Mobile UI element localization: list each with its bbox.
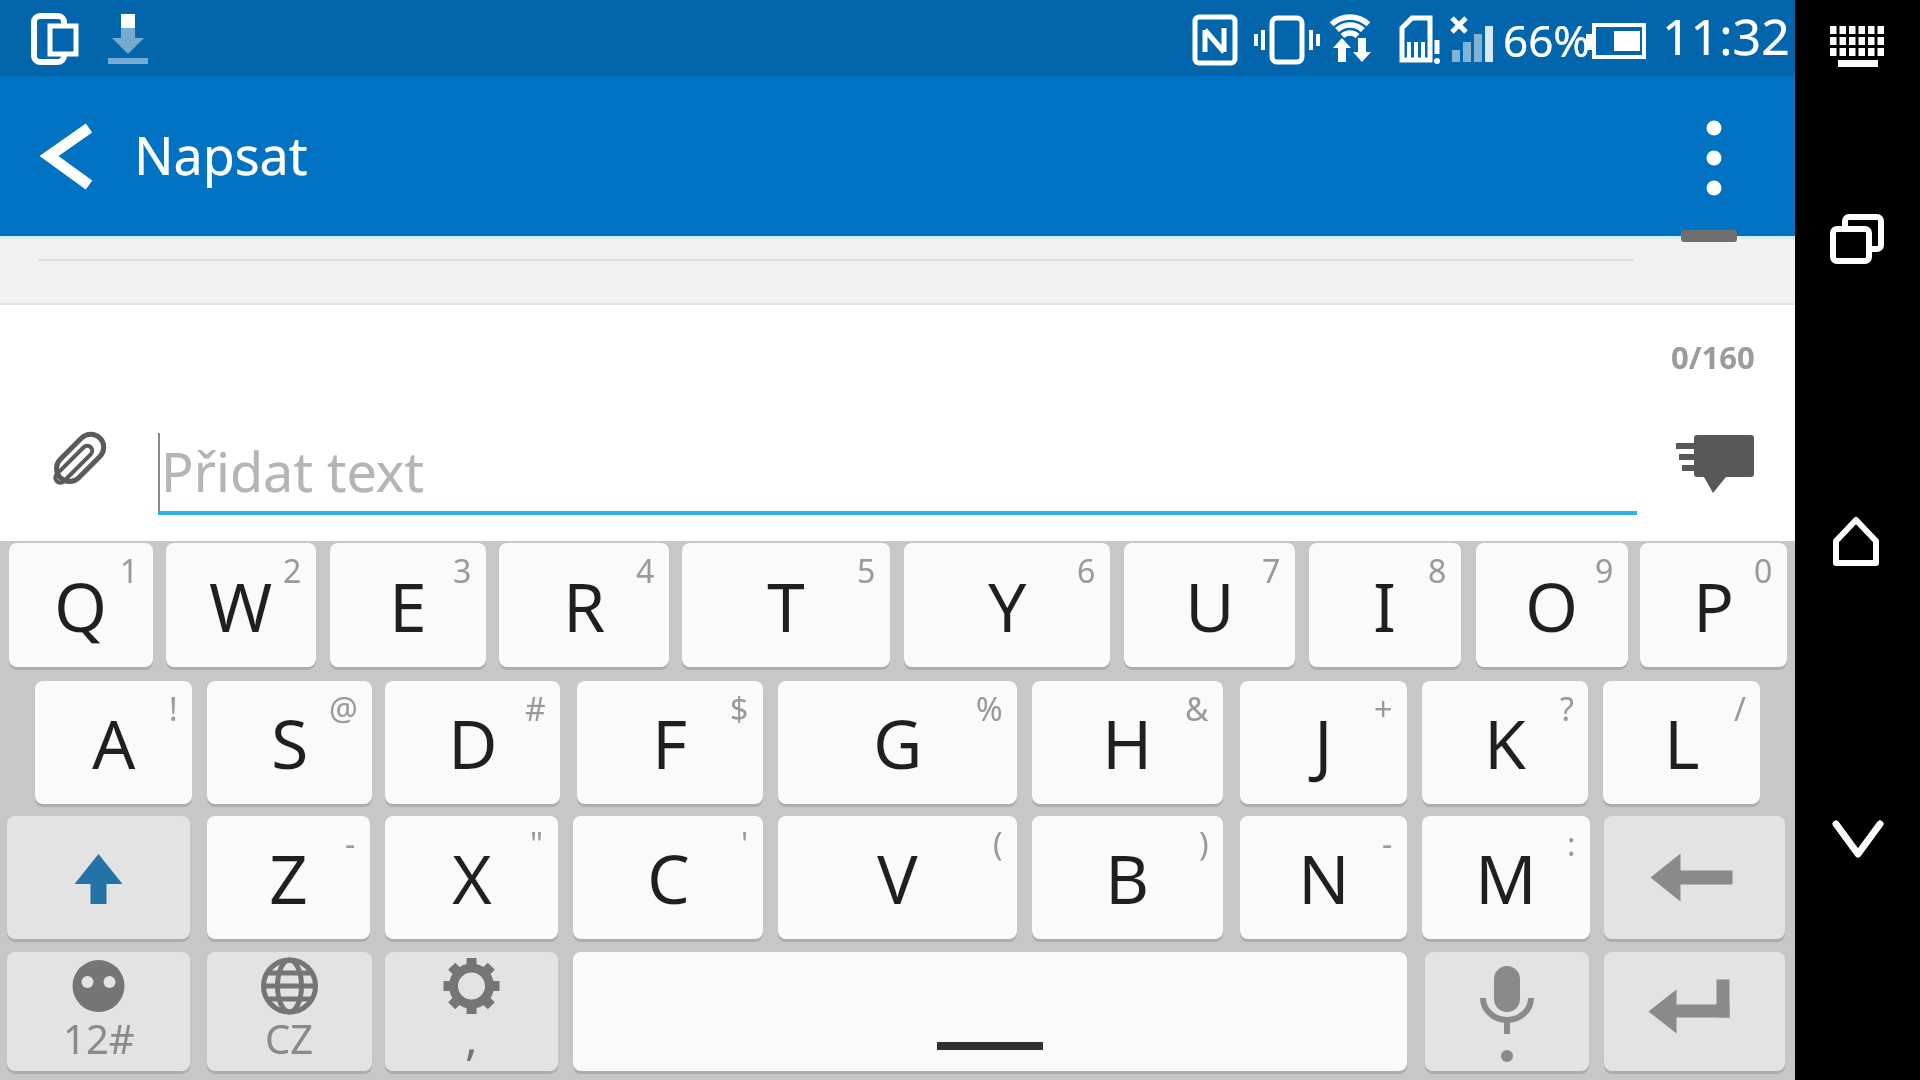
staticText: 12# (63, 1011, 135, 1065)
staticText: P (1693, 559, 1735, 652)
button[interactable]: S (207, 681, 372, 804)
staticText: CZ (265, 1011, 314, 1065)
staticText: I (1373, 559, 1397, 652)
staticText: 1 (120, 549, 139, 593)
staticText: ? (1560, 687, 1574, 731)
staticText: Z (269, 831, 308, 924)
staticText: O (1525, 559, 1579, 652)
staticText: 5 (857, 549, 876, 593)
staticText: - (345, 822, 356, 866)
button[interactable]: Q (9, 543, 153, 667)
staticText: 0/160 (1671, 336, 1755, 378)
staticText: 8 (1428, 549, 1447, 593)
staticText: J (1314, 696, 1333, 789)
staticText: Y (988, 559, 1027, 652)
button[interactable]: H (1032, 681, 1223, 804)
button[interactable]: Z (207, 816, 370, 939)
button[interactable]: Přidat text (158, 420, 1637, 516)
staticText: B (1105, 831, 1150, 924)
button[interactable]: F (577, 681, 763, 804)
staticText: F (652, 696, 688, 789)
button[interactable] (7, 816, 190, 939)
staticText: M (1475, 831, 1537, 924)
button[interactable]: W (166, 543, 316, 667)
staticText: + (1374, 687, 1393, 731)
staticText: 0 (1754, 549, 1773, 593)
staticText: T (767, 559, 805, 652)
button[interactable] (1795, 205, 1920, 275)
staticText: N (1298, 831, 1350, 924)
staticText: H (1102, 696, 1153, 789)
button[interactable]: V (778, 816, 1017, 939)
staticText: K (1484, 696, 1527, 789)
button[interactable]: N (1240, 816, 1407, 939)
button[interactable]: L (1603, 681, 1760, 804)
button[interactable] (1795, 10, 1920, 80)
button[interactable] (20, 106, 120, 206)
staticText: U (1185, 559, 1235, 652)
button[interactable]: 12# (7, 952, 190, 1071)
button[interactable] (1666, 425, 1766, 505)
button[interactable]: B (1032, 816, 1223, 939)
staticText: 4 (636, 549, 655, 593)
staticText: - (1382, 822, 1393, 866)
button[interactable]: J (1240, 681, 1407, 804)
staticText: $ (730, 687, 749, 731)
staticText: V (877, 831, 918, 924)
staticText: R (563, 559, 606, 652)
staticText: Q (54, 559, 108, 652)
staticText: 7 (1262, 549, 1281, 593)
button[interactable]: A (35, 681, 192, 804)
button[interactable]: G (778, 681, 1017, 804)
staticText: 6 (1077, 549, 1096, 593)
staticText: , (465, 1004, 478, 1069)
staticText: G (873, 696, 923, 789)
button[interactable] (573, 952, 1407, 1071)
button[interactable] (1604, 816, 1785, 939)
button[interactable]: T (682, 543, 890, 667)
staticText: 9 (1595, 549, 1614, 593)
button[interactable]: X (385, 816, 558, 939)
button[interactable] (1425, 952, 1589, 1071)
button[interactable] (1604, 952, 1785, 1071)
staticText: W (209, 559, 273, 652)
staticText: " (530, 822, 544, 866)
button[interactable]: CZ (207, 952, 372, 1071)
button[interactable]: Y (904, 543, 1110, 667)
button[interactable]: R (499, 543, 669, 667)
staticText: C (647, 831, 690, 924)
button[interactable]: O (1476, 543, 1628, 667)
staticText: & (1185, 687, 1209, 731)
staticText: X (452, 831, 492, 924)
button[interactable] (1664, 106, 1764, 206)
staticText: A (92, 696, 136, 789)
button[interactable] (40, 420, 120, 500)
staticText: @ (329, 687, 358, 731)
staticText: : (1567, 822, 1576, 866)
staticText: L (1664, 696, 1700, 789)
button[interactable]: P (1640, 543, 1787, 667)
staticText: % (976, 687, 1003, 731)
button[interactable]: K (1422, 681, 1588, 804)
button[interactable] (1795, 505, 1920, 575)
staticText: ( (993, 822, 1003, 866)
button[interactable]: C (573, 816, 763, 939)
button[interactable]: , (385, 952, 558, 1071)
staticText: # (525, 687, 546, 731)
button[interactable]: I (1309, 543, 1461, 667)
staticText: D (448, 696, 498, 789)
staticText: ) (1199, 822, 1209, 866)
staticText: 3 (453, 549, 472, 593)
staticText: 2 (283, 549, 302, 593)
button[interactable]: U (1124, 543, 1295, 667)
button[interactable]: D (385, 681, 560, 804)
staticText: 66% (1503, 10, 1590, 70)
staticText: S (271, 696, 309, 789)
staticText: Přidat text (161, 434, 424, 508)
button[interactable]: E (330, 543, 486, 667)
staticText: E (389, 559, 427, 652)
button[interactable]: M (1422, 816, 1590, 939)
button[interactable] (1795, 810, 1920, 880)
staticText: / (1734, 687, 1746, 731)
staticText: Napsat (134, 119, 308, 190)
